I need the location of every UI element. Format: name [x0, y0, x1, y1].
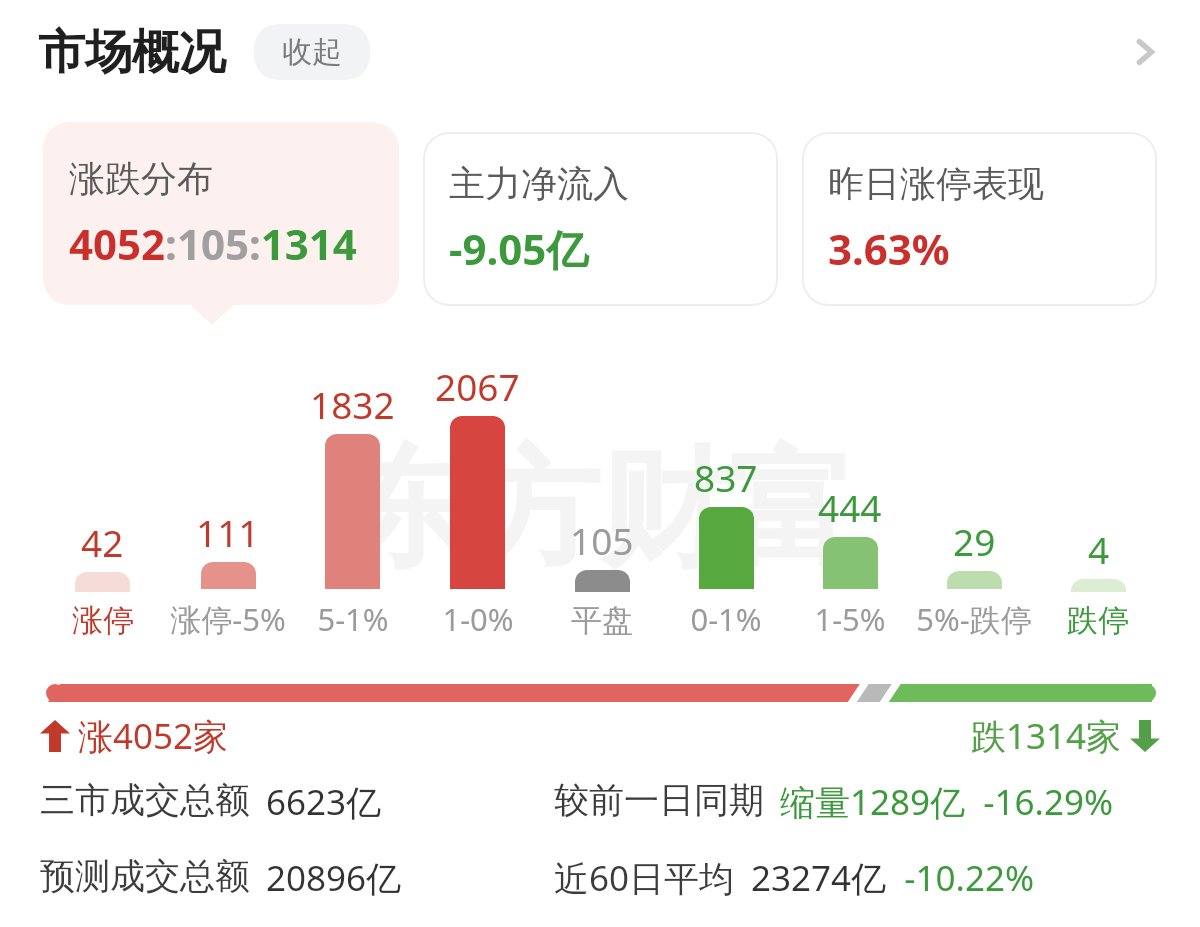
- staticText: 涨停: [72, 601, 134, 640]
- staticText: 4: [1088, 524, 1110, 574]
- staticText: 29: [953, 516, 996, 566]
- staticText: 涨4052家: [78, 712, 229, 760]
- button[interactable]: 昨日涨停表现: [802, 132, 1157, 306]
- staticText: 20896亿: [266, 854, 402, 902]
- staticText: 涨跌分布: [69, 156, 213, 201]
- staticText: 缩量1289亿 -16.29%: [780, 778, 1114, 826]
- staticText: 42: [81, 517, 124, 567]
- staticText: 近60日平均: [554, 854, 735, 902]
- staticText: 5%-跌停: [916, 598, 1032, 640]
- staticText: 1-5%: [814, 598, 886, 640]
- staticText: 2067: [435, 361, 520, 411]
- staticText: 市场概况: [38, 23, 226, 82]
- button[interactable]: 收起: [254, 24, 370, 80]
- staticText: 4052:105:1314: [69, 215, 357, 272]
- staticText: 3.63%: [828, 220, 950, 277]
- staticText: 主力净流入: [449, 161, 629, 206]
- staticText: 5-1%: [317, 598, 389, 640]
- staticText: 跌停: [1067, 601, 1129, 640]
- staticText: 1-0%: [442, 598, 514, 640]
- staticText: 平盘: [571, 601, 633, 640]
- staticText: 东方财富: [344, 430, 856, 591]
- staticText: 0-1%: [690, 598, 762, 640]
- button[interactable]: 主力净流入: [423, 132, 778, 306]
- staticText: 较前一日同期: [554, 778, 764, 822]
- staticText: -9.05亿: [449, 220, 589, 277]
- button[interactable]: 涨跌分布: [43, 122, 399, 305]
- staticText: 涨停-5%: [170, 598, 286, 640]
- staticText: 6623亿: [266, 778, 382, 826]
- staticText: 三市成交总额: [40, 778, 250, 822]
- staticText: 105: [570, 515, 634, 565]
- staticText: 预测成交总额: [40, 854, 250, 898]
- staticText: 111: [196, 507, 260, 557]
- staticText: 收起: [282, 33, 342, 71]
- staticText: 1832: [310, 379, 395, 429]
- staticText: 跌1314家: [971, 712, 1122, 760]
- staticText: 昨日涨停表现: [828, 161, 1044, 206]
- staticText: 444: [818, 482, 882, 532]
- button[interactable]: 更多: [1110, 17, 1180, 87]
- staticText: 23274亿 -10.22%: [751, 854, 1035, 902]
- staticText: 837: [694, 452, 758, 502]
